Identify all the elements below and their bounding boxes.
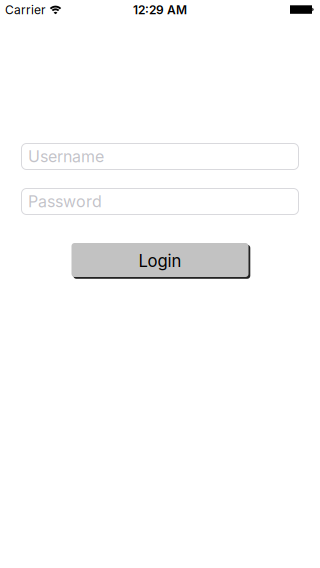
staticText: Username — [28, 147, 104, 166]
button[interactable]: Username — [21, 143, 299, 170]
staticText: Password — [28, 192, 102, 211]
staticText: Login — [138, 251, 181, 271]
staticText: Carrier — [5, 3, 46, 17]
button[interactable]: Login — [71, 243, 248, 277]
staticText: 12:29 AM — [133, 3, 187, 17]
button[interactable]: Password — [21, 188, 299, 215]
